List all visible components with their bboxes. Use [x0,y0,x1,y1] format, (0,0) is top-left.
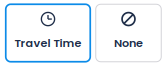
button[interactable]: None [96,4,161,62]
button[interactable]: Travel Time [6,4,90,62]
staticText: Travel Time [14,35,81,51]
staticText: None [114,35,143,51]
